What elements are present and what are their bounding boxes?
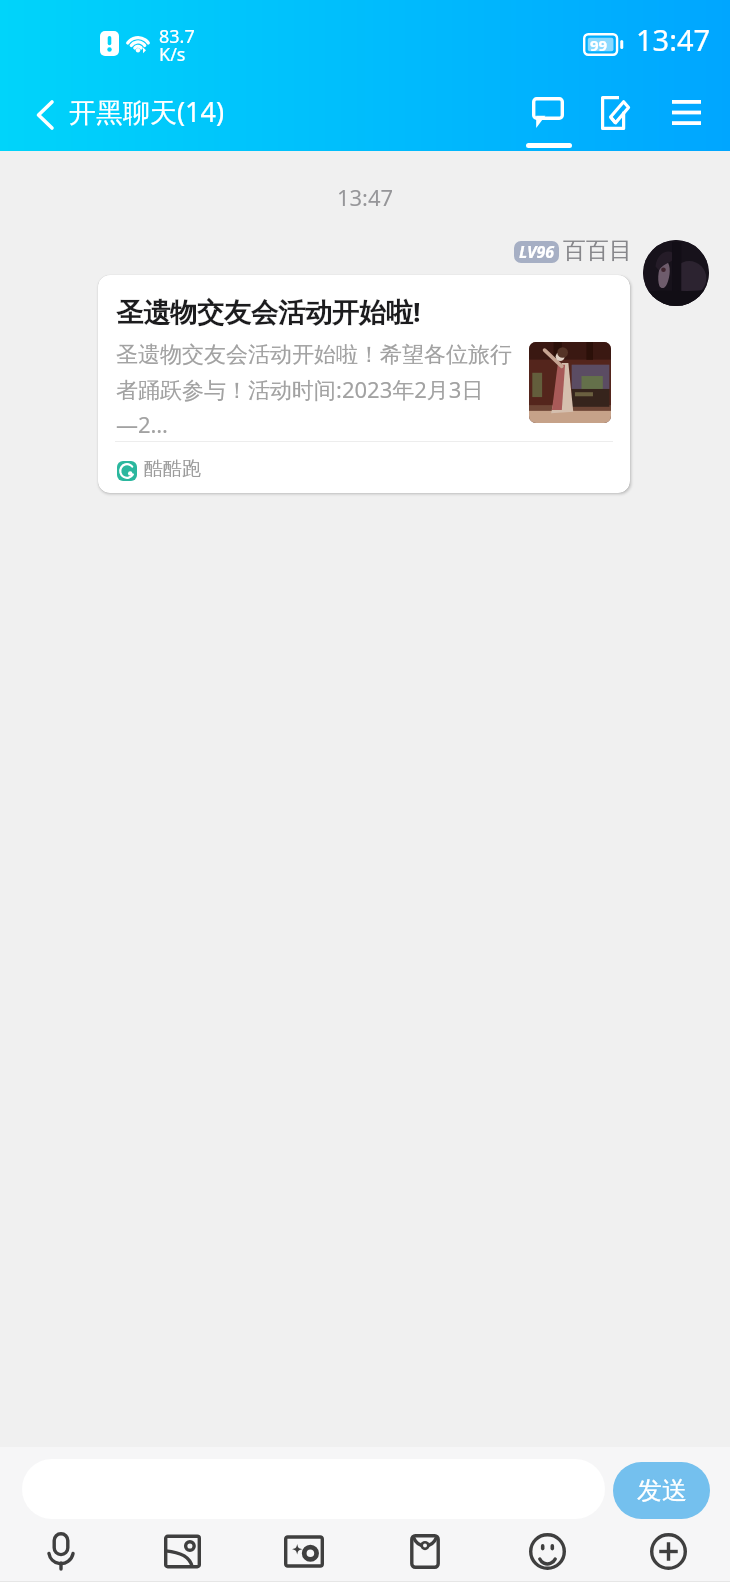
staticText: LV96 — [519, 241, 555, 263]
staticText: 酷酷跑 — [144, 457, 201, 481]
staticText: 圣遗物交友会活动开始啦！希望各位旅行者踊跃参与！活动时间:2023年2月3日 —… — [116, 341, 516, 439]
button[interactable]: Compose — [584, 84, 646, 151]
button[interactable]: Messages — [512, 84, 586, 151]
staticText: 圣遗物交友会活动开始啦! — [116, 293, 421, 330]
button[interactable]: 发送 — [613, 1462, 710, 1519]
button[interactable]: Menu — [655, 84, 717, 151]
staticText: K/s — [159, 42, 186, 67]
button[interactable]: Voice — [30, 1520, 92, 1582]
staticText: 13:47 — [0, 182, 730, 212]
button[interactable]: 圣遗物交友会活动开始啦! — [98, 275, 630, 493]
button[interactable]: Back — [14, 84, 76, 151]
button[interactable]: Image — [151, 1520, 213, 1582]
button[interactable]: Emoji — [516, 1520, 578, 1582]
staticText: 99 — [590, 35, 608, 55]
staticText: 发送 — [637, 1475, 687, 1506]
staticText: 开黑聊天(14) — [69, 93, 225, 130]
staticText: 83.7 — [159, 24, 195, 49]
button[interactable]: Avatar — [643, 240, 709, 306]
button[interactable]: Gift — [394, 1520, 456, 1582]
staticText: 13:47 — [636, 20, 711, 59]
button[interactable]: Sticker — [273, 1520, 335, 1582]
button[interactable]: More — [637, 1520, 699, 1582]
staticText: 百百目 — [563, 236, 632, 265]
